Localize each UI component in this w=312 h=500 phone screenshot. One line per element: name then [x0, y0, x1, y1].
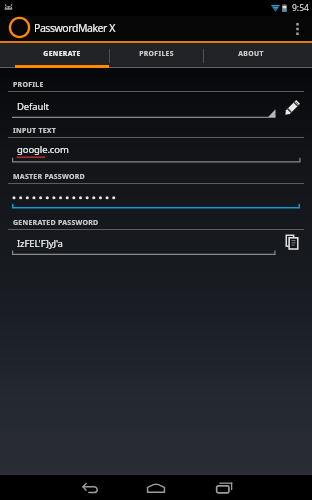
staticText: 9:54 [292, 2, 309, 14]
staticText: Default [17, 100, 49, 113]
staticText: google.com [17, 143, 69, 156]
staticText: PROFILES [139, 49, 174, 58]
button[interactable] [8, 187, 301, 208]
staticText: GENERATED PASSWORD [13, 218, 99, 228]
staticText: INPUT TEXT [13, 126, 57, 136]
button[interactable]: google.com [8, 141, 301, 162]
button[interactable]: Recent apps [207, 475, 241, 500]
button[interactable]: PROFILES [110, 43, 203, 68]
button[interactable]: GENERATE [15, 43, 109, 68]
button[interactable]: Home [139, 475, 173, 500]
staticText: GENERATE [43, 49, 81, 58]
staticText: MASTER PASSWORD [13, 172, 85, 182]
button[interactable]: Default [8, 96, 280, 118]
button[interactable]: Copy password [280, 230, 304, 254]
staticText: ABOUT [238, 49, 264, 58]
button[interactable]: More options [282, 16, 312, 41]
staticText: PROFILE [13, 80, 44, 90]
button[interactable]: IzFEL'F]yJ'a [8, 234, 276, 255]
button[interactable]: Edit profile [280, 94, 305, 119]
staticText: IzFEL'F]yJ'a [17, 237, 63, 250]
button[interactable]: Back [72, 475, 106, 500]
staticText: PasswordMaker X [34, 21, 115, 35]
button[interactable]: ABOUT [204, 43, 298, 68]
